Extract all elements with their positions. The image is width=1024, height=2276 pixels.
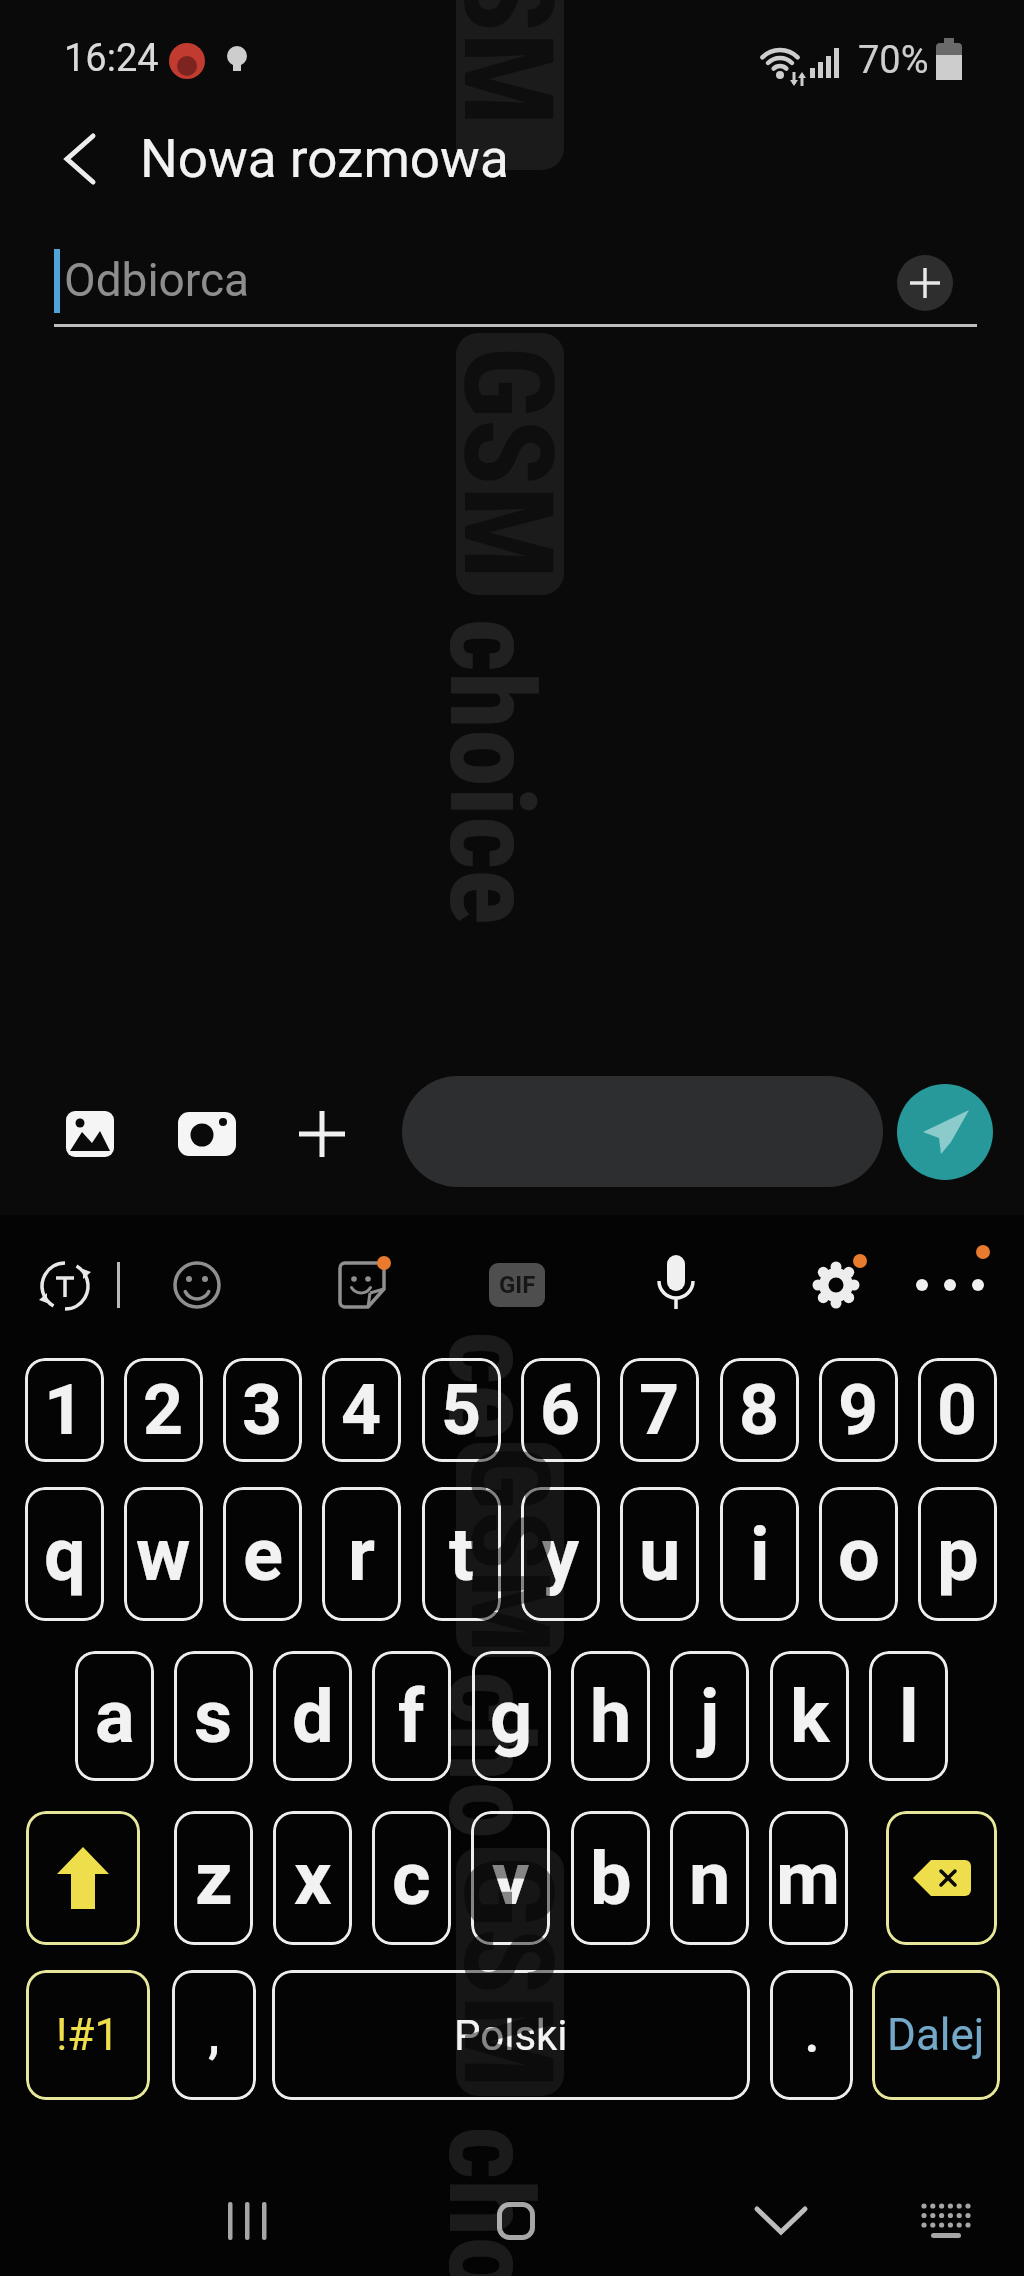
button[interactable]: 4 bbox=[322, 1358, 401, 1462]
button[interactable] bbox=[34, 1255, 96, 1317]
button[interactable] bbox=[897, 255, 953, 311]
button[interactable]: 1 bbox=[25, 1358, 104, 1462]
button[interactable]: t bbox=[422, 1487, 501, 1621]
staticText: j bbox=[700, 1673, 720, 1760]
button[interactable]: j bbox=[670, 1651, 749, 1781]
button[interactable]: y bbox=[521, 1487, 600, 1621]
button[interactable]: p bbox=[918, 1487, 997, 1621]
button[interactable] bbox=[886, 1811, 997, 1945]
staticText: b bbox=[590, 1835, 632, 1922]
button[interactable]: z bbox=[174, 1811, 253, 1945]
button[interactable]: s bbox=[174, 1651, 253, 1781]
button[interactable] bbox=[331, 1254, 393, 1316]
button[interactable]: 6 bbox=[521, 1358, 600, 1462]
button[interactable]: 2 bbox=[124, 1358, 203, 1462]
staticText: choice bbox=[422, 618, 558, 925]
staticText: o bbox=[838, 1511, 880, 1598]
button[interactable]: x bbox=[273, 1811, 352, 1945]
staticText: GSM bbox=[440, 1855, 580, 2089]
staticText: l bbox=[899, 1673, 919, 1760]
button[interactable]: g bbox=[472, 1651, 551, 1781]
staticText: 1 bbox=[44, 1369, 85, 1451]
staticText: s bbox=[194, 1673, 233, 1760]
staticText: Nowa rozmowa bbox=[140, 128, 509, 190]
staticText: z bbox=[195, 1835, 233, 1922]
button[interactable] bbox=[805, 1254, 867, 1316]
button[interactable] bbox=[735, 2186, 827, 2256]
staticText: e bbox=[243, 1511, 283, 1598]
staticText: SM bbox=[440, 0, 580, 126]
button[interactable]: e bbox=[223, 1487, 302, 1621]
staticText: q bbox=[44, 1511, 86, 1598]
button[interactable]: . bbox=[770, 1970, 853, 2100]
staticText: r bbox=[348, 1511, 376, 1598]
staticText: 7 bbox=[639, 1369, 680, 1451]
button[interactable] bbox=[44, 123, 116, 195]
button[interactable] bbox=[58, 1102, 122, 1166]
button[interactable] bbox=[175, 1104, 239, 1164]
button[interactable]: 8 bbox=[720, 1358, 799, 1462]
staticText: a bbox=[95, 1673, 135, 1760]
staticText: cho bbox=[422, 1671, 558, 1840]
button[interactable]: Dalej bbox=[872, 1970, 1000, 2100]
button[interactable]: v bbox=[471, 1811, 550, 1945]
staticText: k bbox=[790, 1673, 830, 1760]
button[interactable] bbox=[200, 2186, 296, 2256]
button[interactable]: d bbox=[273, 1651, 352, 1781]
staticText: GSM bbox=[445, 1446, 574, 1654]
staticText: 70% bbox=[858, 38, 929, 83]
staticText: cho bbox=[422, 2126, 558, 2276]
staticText: f bbox=[398, 1673, 425, 1760]
button[interactable] bbox=[905, 1254, 995, 1316]
button[interactable]: u bbox=[620, 1487, 699, 1621]
staticText: GSM bbox=[440, 346, 580, 580]
button[interactable] bbox=[906, 2190, 986, 2252]
staticText: v bbox=[492, 1835, 530, 1922]
staticText: 4 bbox=[341, 1369, 382, 1451]
staticText: 0 bbox=[937, 1369, 978, 1451]
button[interactable]: , bbox=[172, 1970, 256, 2100]
button[interactable]: b bbox=[571, 1811, 650, 1945]
button[interactable]: w bbox=[124, 1487, 203, 1621]
button[interactable]: 0 bbox=[918, 1358, 997, 1462]
staticText: x bbox=[294, 1835, 332, 1922]
button[interactable]: m bbox=[769, 1811, 848, 1945]
staticText: ce bbox=[422, 1331, 558, 1440]
button[interactable] bbox=[166, 1254, 228, 1316]
button[interactable]: l bbox=[869, 1651, 948, 1781]
button[interactable]: r bbox=[322, 1487, 401, 1621]
button[interactable]: o bbox=[819, 1487, 898, 1621]
button[interactable]: 7 bbox=[620, 1358, 699, 1462]
button[interactable]: q bbox=[25, 1487, 104, 1621]
button[interactable]: k bbox=[770, 1651, 849, 1781]
button[interactable] bbox=[292, 1104, 352, 1164]
button[interactable]: h bbox=[571, 1651, 650, 1781]
button[interactable]: 9 bbox=[819, 1358, 898, 1462]
button[interactable]: f bbox=[372, 1651, 451, 1781]
button[interactable]: !#1 bbox=[26, 1970, 150, 2100]
button[interactable]: Polski bbox=[272, 1970, 750, 2100]
button[interactable] bbox=[897, 1084, 993, 1180]
button[interactable]: 5 bbox=[422, 1358, 501, 1462]
button[interactable]: n bbox=[670, 1811, 749, 1945]
staticText: y bbox=[542, 1511, 580, 1598]
button[interactable]: c bbox=[372, 1811, 451, 1945]
staticText: m bbox=[776, 1835, 841, 1922]
staticText: g bbox=[490, 1673, 533, 1760]
button[interactable]: a bbox=[75, 1651, 154, 1781]
staticText: p bbox=[937, 1511, 979, 1598]
button[interactable] bbox=[402, 1076, 883, 1187]
staticText: 2 bbox=[143, 1369, 184, 1451]
button[interactable] bbox=[470, 2186, 562, 2256]
staticText: !#1 bbox=[56, 2009, 120, 2061]
staticText: i bbox=[750, 1511, 770, 1598]
button[interactable]: GIF bbox=[489, 1263, 545, 1307]
staticText: 8 bbox=[739, 1369, 780, 1451]
staticText: h bbox=[590, 1673, 632, 1760]
button[interactable]: 3 bbox=[223, 1358, 302, 1462]
button[interactable] bbox=[645, 1250, 707, 1320]
staticText: c bbox=[392, 1835, 431, 1922]
staticText: 6 bbox=[540, 1369, 581, 1451]
button[interactable] bbox=[26, 1811, 140, 1945]
button[interactable]: i bbox=[720, 1487, 799, 1621]
